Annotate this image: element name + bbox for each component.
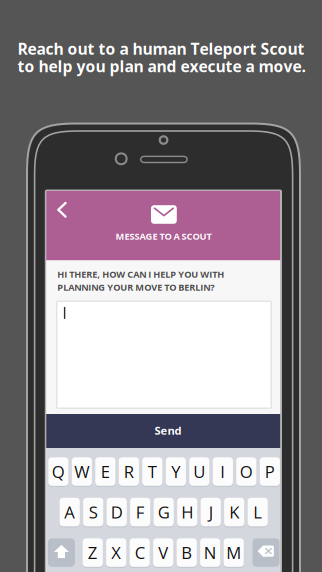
staticText: X bbox=[111, 541, 121, 564]
button[interactable]: U bbox=[189, 457, 209, 486]
button[interactable]: V bbox=[153, 538, 173, 567]
staticText: A bbox=[64, 501, 75, 523]
staticText: T bbox=[148, 460, 157, 483]
button[interactable]: N bbox=[200, 538, 220, 567]
staticText: Y bbox=[171, 460, 180, 483]
staticText: Z bbox=[88, 541, 98, 564]
staticText: to help you plan and execute a move. bbox=[18, 55, 306, 77]
staticText: R bbox=[124, 460, 134, 483]
button[interactable]: Q bbox=[48, 457, 68, 486]
staticText: N bbox=[204, 541, 217, 564]
button[interactable]: P bbox=[260, 457, 280, 486]
button[interactable]: Shift bbox=[48, 538, 75, 567]
staticText: MESSAGE TO A SCOUT bbox=[115, 230, 211, 242]
button[interactable]: Z bbox=[83, 538, 103, 567]
staticText: H bbox=[181, 501, 193, 523]
button[interactable]: L bbox=[248, 498, 268, 526]
staticText: C bbox=[135, 541, 145, 564]
button[interactable]: K bbox=[224, 498, 244, 526]
button[interactable]: M bbox=[224, 538, 244, 567]
staticText: U bbox=[193, 460, 205, 483]
button[interactable]: S bbox=[83, 498, 103, 526]
button[interactable]: O bbox=[236, 457, 256, 486]
staticText: Send bbox=[154, 423, 181, 438]
staticText: I bbox=[220, 460, 225, 483]
button[interactable]: C bbox=[130, 538, 150, 567]
button[interactable]: Delete bbox=[252, 538, 279, 567]
staticText: S bbox=[89, 501, 98, 523]
staticText: G bbox=[158, 501, 170, 523]
staticText: Q bbox=[52, 460, 65, 483]
button[interactable]: F bbox=[130, 498, 150, 526]
staticText: M bbox=[226, 541, 241, 564]
staticText: Reach out to a human Teleport Scout bbox=[18, 38, 305, 59]
staticText: E bbox=[101, 460, 110, 483]
button[interactable]: H bbox=[177, 498, 197, 526]
staticText: PLANNING YOUR MOVE TO BERLIN? bbox=[57, 281, 214, 293]
button[interactable]: J bbox=[201, 498, 221, 526]
button[interactable]: T bbox=[142, 457, 162, 486]
button[interactable]: E bbox=[95, 457, 115, 486]
button[interactable]: Send bbox=[0, 0, 322, 572]
button[interactable]: A bbox=[60, 498, 80, 526]
staticText: P bbox=[265, 460, 275, 483]
staticText: W bbox=[74, 460, 89, 483]
button[interactable]: Back bbox=[46, 191, 280, 260]
staticText: HI THERE, HOW CAN I HELP YOU WITH bbox=[57, 268, 224, 280]
button[interactable]: X bbox=[106, 538, 126, 567]
button[interactable]: W bbox=[72, 457, 92, 486]
button[interactable]: Y bbox=[166, 457, 186, 486]
staticText: V bbox=[158, 541, 168, 564]
staticText: L bbox=[253, 501, 262, 523]
staticText: F bbox=[136, 501, 145, 523]
button[interactable]: R bbox=[119, 457, 139, 486]
button[interactable]: B bbox=[177, 538, 197, 567]
staticText: K bbox=[229, 501, 239, 523]
button[interactable]: D bbox=[107, 498, 127, 526]
staticText: D bbox=[111, 501, 123, 523]
staticText: O bbox=[240, 460, 253, 483]
button[interactable]: I bbox=[213, 457, 233, 486]
staticText: J bbox=[209, 501, 213, 523]
button[interactable]: G bbox=[154, 498, 174, 526]
staticText: B bbox=[181, 541, 192, 564]
